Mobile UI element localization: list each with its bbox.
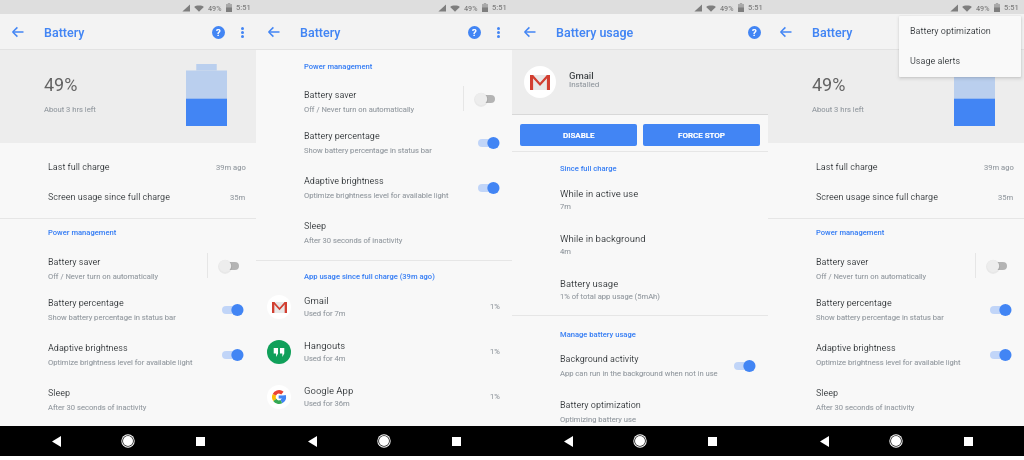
staticText: Battery saver (48, 257, 101, 268)
staticText: Sleep (816, 388, 839, 399)
button[interactable]: Sleep (0, 377, 256, 422)
staticText: Battery percentage (816, 298, 892, 309)
staticText: Battery optimization (560, 400, 641, 411)
button[interactable]: Battery percentage (768, 287, 1024, 332)
button[interactable]: Recents (189, 430, 211, 452)
staticText: Manage battery usage (560, 330, 636, 339)
button[interactable]: Battery percentage (0, 287, 256, 332)
button[interactable]: While in active use (512, 177, 768, 222)
button[interactable]: FORCE STOP (643, 124, 760, 146)
button[interactable]: Google App (256, 374, 512, 419)
button[interactable]: Screen usage since full charge (0, 182, 256, 212)
staticText: 49% (812, 74, 846, 95)
button[interactable]: Back (45, 430, 67, 452)
button[interactable]: Adaptive brightness (768, 332, 1024, 377)
button[interactable]: Adaptive brightness (256, 165, 512, 210)
staticText: Show battery percentage in status bar (304, 146, 432, 155)
staticText: ? (752, 27, 757, 38)
button[interactable]: Back (557, 430, 579, 452)
staticText: 5:51 (492, 3, 507, 12)
staticText: About 3 hrs left (44, 105, 96, 114)
staticText: Used for 7m (304, 309, 346, 318)
staticText: Adaptive brightness (816, 343, 896, 354)
button[interactable]: Usage alerts (899, 46, 1021, 77)
button[interactable]: Hangouts (256, 329, 512, 374)
button[interactable]: Recents (701, 430, 723, 452)
staticText: FORCE STOP (678, 131, 725, 140)
button[interactable]: Sleep (768, 377, 1024, 422)
button[interactable]: Toggle (478, 130, 495, 156)
button[interactable]: Back (301, 430, 323, 452)
button[interactable]: Back (813, 430, 835, 452)
staticText: Gmail (569, 70, 594, 81)
button[interactable]: Battery usage (512, 267, 768, 312)
staticText: Last full charge (816, 162, 878, 173)
staticText: 35m (998, 193, 1014, 202)
staticText: After 30 seconds of inactivity (816, 403, 915, 412)
button[interactable]: Help (742, 20, 766, 44)
staticText: Optimize brightness level for available … (48, 358, 193, 367)
button[interactable]: Toggle (478, 86, 495, 112)
button[interactable]: Back (518, 20, 542, 44)
staticText: 49% (720, 4, 734, 12)
button[interactable]: DISABLE (520, 124, 637, 146)
button[interactable]: Battery optimization (512, 389, 768, 426)
staticText: Used for 4m (304, 354, 346, 363)
staticText: DISABLE (563, 131, 595, 140)
button[interactable]: Toggle (222, 253, 239, 279)
button[interactable]: Recents (957, 430, 979, 452)
button[interactable]: Last full charge (768, 152, 1024, 182)
button[interactable]: Battery optimization (899, 16, 1021, 46)
button[interactable]: Help (974, 20, 998, 44)
staticText: Battery (300, 25, 341, 40)
button[interactable]: Back (774, 20, 798, 44)
button[interactable]: Recents (445, 430, 467, 452)
staticText: 1% of total app usage (5mAh) (560, 292, 660, 301)
button[interactable]: Toggle (990, 342, 1007, 368)
button[interactable]: Battery saver (256, 83, 512, 120)
button[interactable]: Battery saver (768, 250, 1024, 287)
button[interactable]: Last full charge (0, 152, 256, 182)
staticText: 5:51 (236, 3, 251, 12)
staticText: Power management (48, 228, 117, 237)
button[interactable]: Home (373, 430, 395, 452)
button[interactable]: Screen usage since full charge (768, 182, 1024, 212)
staticText: Hangouts (304, 340, 346, 351)
staticText: Used for 36m (304, 399, 350, 408)
staticText: Show battery percentage in status bar (816, 313, 944, 322)
button[interactable]: Adaptive brightness (0, 332, 256, 377)
button[interactable]: Toggle (990, 253, 1007, 279)
button[interactable]: Sleep (256, 210, 512, 255)
button[interactable]: Toggle (990, 297, 1007, 323)
button[interactable]: Background activity (512, 343, 768, 389)
staticText: ? (216, 27, 221, 38)
button[interactable]: Back (262, 20, 286, 44)
staticText: 1% (490, 302, 500, 311)
button[interactable]: More options (231, 21, 253, 43)
staticText: Sleep (48, 388, 71, 399)
button[interactable]: Home (117, 430, 139, 452)
button[interactable]: Toggle (222, 342, 239, 368)
button[interactable]: Help (206, 20, 230, 44)
button[interactable]: Toggle (478, 175, 495, 201)
button[interactable]: Battery saver (0, 250, 256, 287)
button[interactable]: Toggle (734, 353, 751, 379)
button[interactable]: More options (487, 21, 509, 43)
button[interactable]: Home (629, 430, 651, 452)
button[interactable]: Toggle (222, 297, 239, 323)
button[interactable]: Battery percentage (256, 120, 512, 165)
button[interactable]: Gmail (256, 284, 512, 329)
staticText: Battery (812, 25, 853, 40)
staticText: Power management (304, 62, 373, 71)
staticText: App usage since full charge (39m ago) (304, 272, 435, 281)
staticText: Battery (44, 25, 85, 40)
staticText: Adaptive brightness (48, 343, 128, 354)
staticText: Last full charge (48, 162, 110, 173)
button[interactable]: While in background (512, 222, 768, 267)
staticText: Power management (816, 228, 885, 237)
staticText: While in active use (560, 188, 639, 199)
button[interactable]: Home (885, 430, 907, 452)
button[interactable]: Help (462, 20, 486, 44)
button[interactable]: Back (6, 20, 30, 44)
